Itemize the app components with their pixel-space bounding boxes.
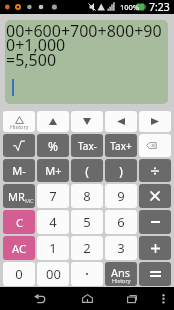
staticText: 4	[49, 213, 57, 231]
staticText: M+	[45, 163, 62, 178]
button[interactable]: Move right	[139, 111, 171, 132]
button[interactable]: Divide	[139, 159, 171, 182]
button[interactable]: 2	[71, 236, 103, 260]
staticText: 7	[49, 187, 57, 205]
staticText: 2	[83, 239, 91, 257]
staticText: 8	[83, 187, 91, 205]
button[interactable]: Move left	[105, 111, 137, 132]
button[interactable]: Square root	[3, 134, 35, 157]
button[interactable]: Home	[72, 287, 102, 310]
button[interactable]: Scroll up	[37, 111, 69, 132]
button[interactable]: Tax-	[71, 134, 103, 157]
button[interactable]: Scroll down	[71, 111, 103, 132]
button[interactable]: History	[3, 111, 35, 132]
button[interactable]: M-	[3, 159, 35, 182]
staticText: 7:23	[149, 0, 170, 14]
staticText: 9	[117, 187, 125, 205]
staticText: Tax-	[78, 139, 97, 153]
button[interactable]: )	[105, 159, 137, 182]
button[interactable]: AC	[3, 236, 35, 260]
staticText: Tax+	[110, 139, 132, 153]
button[interactable]: More options	[152, 287, 174, 310]
button[interactable]: Decimal point	[71, 262, 103, 286]
button[interactable]: 9	[105, 184, 137, 208]
staticText: MR	[8, 189, 25, 204]
button[interactable]: 8	[71, 184, 103, 208]
staticText: AC	[12, 241, 26, 256]
button[interactable]: Plus	[139, 236, 171, 260]
button[interactable]: 6	[105, 210, 137, 234]
button[interactable]: (	[71, 159, 103, 182]
button[interactable]: C	[3, 210, 35, 234]
staticText: Ans	[111, 265, 131, 280]
button[interactable]: Answer	[105, 262, 137, 286]
button[interactable]: M+	[37, 159, 69, 182]
button[interactable]: %	[37, 134, 69, 157]
button[interactable]: Equals	[139, 262, 171, 286]
staticText: History	[112, 277, 131, 284]
staticText: 1	[49, 239, 57, 257]
button[interactable]: Minus	[139, 210, 171, 234]
button[interactable]: Back	[24, 287, 54, 310]
button[interactable]: 4	[37, 210, 69, 234]
button[interactable]: 00	[37, 262, 69, 286]
staticText: 00	[46, 265, 61, 283]
button[interactable]: 7	[37, 184, 69, 208]
staticText: MC	[25, 197, 34, 204]
button[interactable]: Recent apps	[117, 287, 147, 310]
staticText: 6	[117, 213, 125, 231]
button[interactable]: 3	[105, 236, 137, 260]
button[interactable]: Memory recall	[3, 184, 35, 208]
staticText: 0+1,000	[6, 34, 66, 56]
button[interactable]: Multiply	[139, 184, 171, 208]
staticText: =5,500	[6, 49, 57, 71]
staticText: C	[16, 215, 23, 230]
staticText: 00+600+700+800+90	[6, 20, 162, 42]
staticText: )	[119, 163, 123, 179]
staticText: 0	[15, 265, 23, 283]
staticText: %	[48, 138, 58, 154]
button[interactable]: Backspace	[139, 134, 171, 157]
staticText: (	[85, 163, 89, 179]
staticText: 5	[83, 213, 91, 231]
staticText: History	[10, 123, 29, 130]
button[interactable]: Tax+	[105, 134, 137, 157]
button[interactable]: 5	[71, 210, 103, 234]
staticText: M-	[12, 163, 26, 178]
button[interactable]: 1	[37, 236, 69, 260]
button[interactable]: 0	[3, 262, 35, 286]
staticText: 100%	[120, 2, 140, 12]
staticText: 3	[117, 239, 125, 257]
